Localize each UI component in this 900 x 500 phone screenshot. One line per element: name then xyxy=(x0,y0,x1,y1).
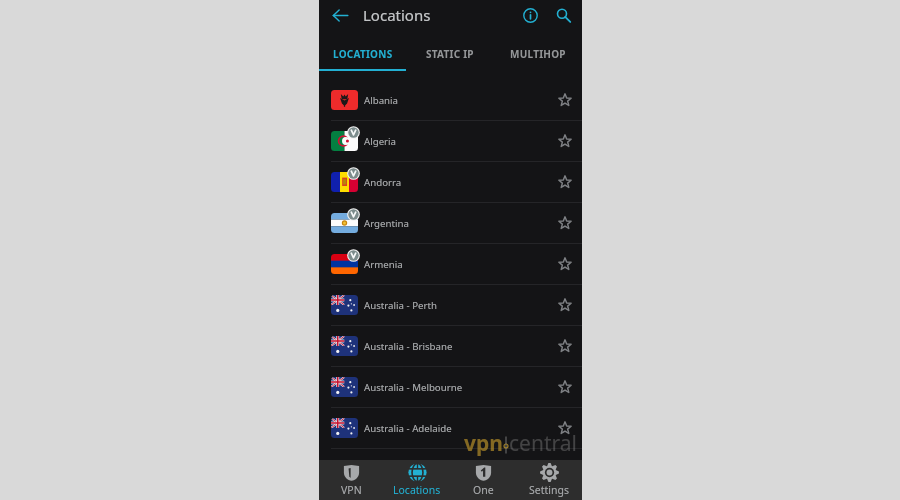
staticText: Australia - Brisbane xyxy=(364,340,453,353)
button[interactable]: Favorite xyxy=(556,132,574,150)
button[interactable]: Favorite xyxy=(556,255,574,273)
button[interactable]: Favorite xyxy=(556,378,574,396)
button[interactable]: Search xyxy=(552,4,574,26)
staticText: vpn xyxy=(464,429,503,458)
button[interactable]: Locations xyxy=(384,460,450,500)
staticText: Armenia xyxy=(364,258,403,271)
button[interactable]: Australia - Adelaide xyxy=(319,408,582,449)
button[interactable]: Back xyxy=(328,3,352,27)
button[interactable]: Favorite xyxy=(556,173,574,191)
button[interactable]: Settings xyxy=(516,460,582,500)
button[interactable]: MULTIHOP xyxy=(494,36,582,71)
staticText: central xyxy=(509,429,577,458)
staticText: STATIC IP xyxy=(426,47,474,61)
button[interactable]: Algeria xyxy=(319,121,582,162)
staticText: Argentina xyxy=(364,217,409,230)
staticText: Australia - Melbourne xyxy=(364,381,463,394)
button[interactable]: Favorite xyxy=(556,296,574,314)
button[interactable]: Australia - Melbourne xyxy=(319,367,582,408)
staticText: MULTIHOP xyxy=(510,47,566,61)
button[interactable]: One xyxy=(450,460,516,500)
button[interactable]: Favorite xyxy=(556,91,574,109)
button[interactable]: Armenia xyxy=(319,244,582,285)
button[interactable]: Albania xyxy=(319,80,582,121)
button[interactable]: Favorite xyxy=(556,214,574,232)
staticText: Locations xyxy=(363,5,431,25)
staticText: Locations xyxy=(393,483,441,497)
button[interactable]: Favorite xyxy=(556,337,574,355)
staticText: One xyxy=(473,483,494,497)
button[interactable]: VPN xyxy=(319,460,384,500)
staticText: Australia - Perth xyxy=(364,299,437,312)
staticText: Australia - Adelaide xyxy=(364,422,452,435)
staticText: Settings xyxy=(529,483,569,497)
button[interactable]: Argentina xyxy=(319,203,582,244)
button[interactable]: Info xyxy=(519,4,541,26)
staticText: LOCATIONS xyxy=(333,47,393,61)
staticText: Albania xyxy=(364,94,399,107)
button[interactable]: Australia - Brisbane xyxy=(319,326,582,367)
button[interactable]: LOCATIONS xyxy=(319,36,406,71)
button[interactable]: Favorite xyxy=(556,419,574,437)
staticText: VPN xyxy=(341,483,362,497)
staticText: Algeria xyxy=(364,135,397,148)
button[interactable]: Australia - Perth xyxy=(319,285,582,326)
button[interactable]: STATIC IP xyxy=(406,36,494,71)
staticText: Andorra xyxy=(364,176,402,189)
button[interactable]: Andorra xyxy=(319,162,582,203)
